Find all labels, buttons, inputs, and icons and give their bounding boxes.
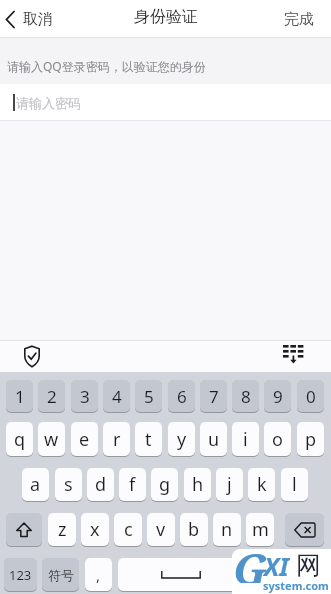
staticText: v: [156, 517, 166, 542]
staticText: system.com: [263, 578, 329, 593]
staticText: 取消: [23, 10, 53, 29]
button[interactable]: w: [38, 422, 65, 456]
staticText: 身份验证: [134, 7, 198, 27]
staticText: G: [233, 538, 269, 583]
button[interactable]: j: [216, 468, 243, 501]
staticText: r: [113, 427, 121, 452]
staticText: 9: [273, 385, 283, 408]
staticText: p: [305, 427, 317, 452]
staticText: g: [159, 472, 171, 497]
button[interactable]: a: [22, 468, 49, 501]
button[interactable]: 3: [71, 380, 98, 412]
staticText: u: [208, 427, 220, 452]
button[interactable]: b: [180, 513, 208, 546]
staticText: j: [227, 472, 232, 497]
staticText: h: [192, 472, 204, 497]
button[interactable]: [22, 345, 42, 368]
staticText: a: [30, 472, 41, 497]
staticText: s: [64, 472, 73, 497]
button[interactable]: 4: [103, 380, 130, 412]
staticText: 网: [296, 550, 321, 581]
button[interactable]: 取消: [5, 10, 53, 29]
staticText: x: [90, 517, 100, 542]
button[interactable]: t: [135, 422, 162, 456]
staticText: c: [124, 517, 133, 542]
staticText: 123: [9, 566, 32, 584]
button[interactable]: 123: [4, 558, 37, 591]
button[interactable]: i: [232, 422, 259, 456]
staticText: 7: [209, 385, 219, 408]
button[interactable]: [250, 558, 324, 591]
button[interactable]: m: [246, 513, 274, 546]
staticText: f: [129, 472, 136, 497]
button[interactable]: 符号: [42, 558, 79, 591]
button[interactable]: l: [281, 468, 308, 501]
staticText: o: [272, 427, 283, 452]
button[interactable]: p: [297, 422, 324, 456]
staticText: 请输入QQ登录密码，以验证您的身份: [7, 58, 206, 74]
button[interactable]: s: [55, 468, 82, 501]
staticText: ,: [96, 565, 101, 585]
button[interactable]: 1: [6, 380, 33, 412]
button[interactable]: 完成: [284, 10, 314, 29]
button[interactable]: 9: [264, 380, 291, 412]
button[interactable]: [283, 345, 305, 367]
staticText: z: [58, 517, 67, 542]
button[interactable]: 0: [297, 380, 324, 412]
button[interactable]: ,: [85, 558, 112, 591]
staticText: y: [177, 427, 187, 452]
staticText: m: [252, 517, 269, 542]
staticText: 符号: [48, 567, 74, 583]
staticText: d: [95, 472, 107, 497]
button[interactable]: r: [103, 422, 130, 456]
staticText: 6: [177, 385, 187, 408]
staticText: t: [145, 427, 152, 452]
button[interactable]: [285, 513, 324, 546]
button[interactable]: k: [248, 468, 275, 501]
staticText: e: [79, 427, 90, 452]
button[interactable]: g: [151, 468, 178, 501]
button[interactable]: q: [6, 422, 33, 456]
staticText: i: [243, 427, 248, 452]
staticText: k: [257, 472, 267, 497]
button[interactable]: d: [87, 468, 114, 501]
button[interactable]: [6, 513, 42, 546]
button[interactable]: 8: [232, 380, 259, 412]
staticText: n: [221, 517, 233, 542]
staticText: 0: [306, 385, 316, 408]
button[interactable]: o: [264, 422, 291, 456]
button[interactable]: [118, 558, 244, 591]
staticText: w: [44, 427, 59, 452]
button[interactable]: 7: [200, 380, 227, 412]
staticText: 4: [112, 385, 122, 408]
staticText: 请输入密码: [16, 95, 81, 111]
staticText: 2: [47, 385, 57, 408]
button[interactable]: f: [119, 468, 146, 501]
staticText: 5: [144, 385, 154, 408]
button[interactable]: n: [213, 513, 241, 546]
staticText: XI: [264, 549, 289, 583]
staticText: l: [292, 472, 297, 497]
button[interactable]: z: [48, 513, 76, 546]
button[interactable]: u: [200, 422, 227, 456]
button[interactable]: v: [147, 513, 175, 546]
staticText: q: [14, 427, 26, 452]
staticText: 完成: [284, 10, 314, 29]
staticText: 3: [80, 385, 90, 408]
button[interactable]: x: [81, 513, 109, 546]
button[interactable]: 2: [38, 380, 65, 412]
button[interactable]: c: [114, 513, 142, 546]
button[interactable]: y: [168, 422, 195, 456]
button[interactable]: 6: [168, 380, 195, 412]
button[interactable]: e: [71, 422, 98, 456]
button[interactable]: h: [184, 468, 211, 501]
staticText: b: [188, 517, 200, 542]
staticText: 8: [241, 385, 251, 408]
staticText: 1: [15, 385, 25, 408]
button[interactable]: 5: [135, 380, 162, 412]
